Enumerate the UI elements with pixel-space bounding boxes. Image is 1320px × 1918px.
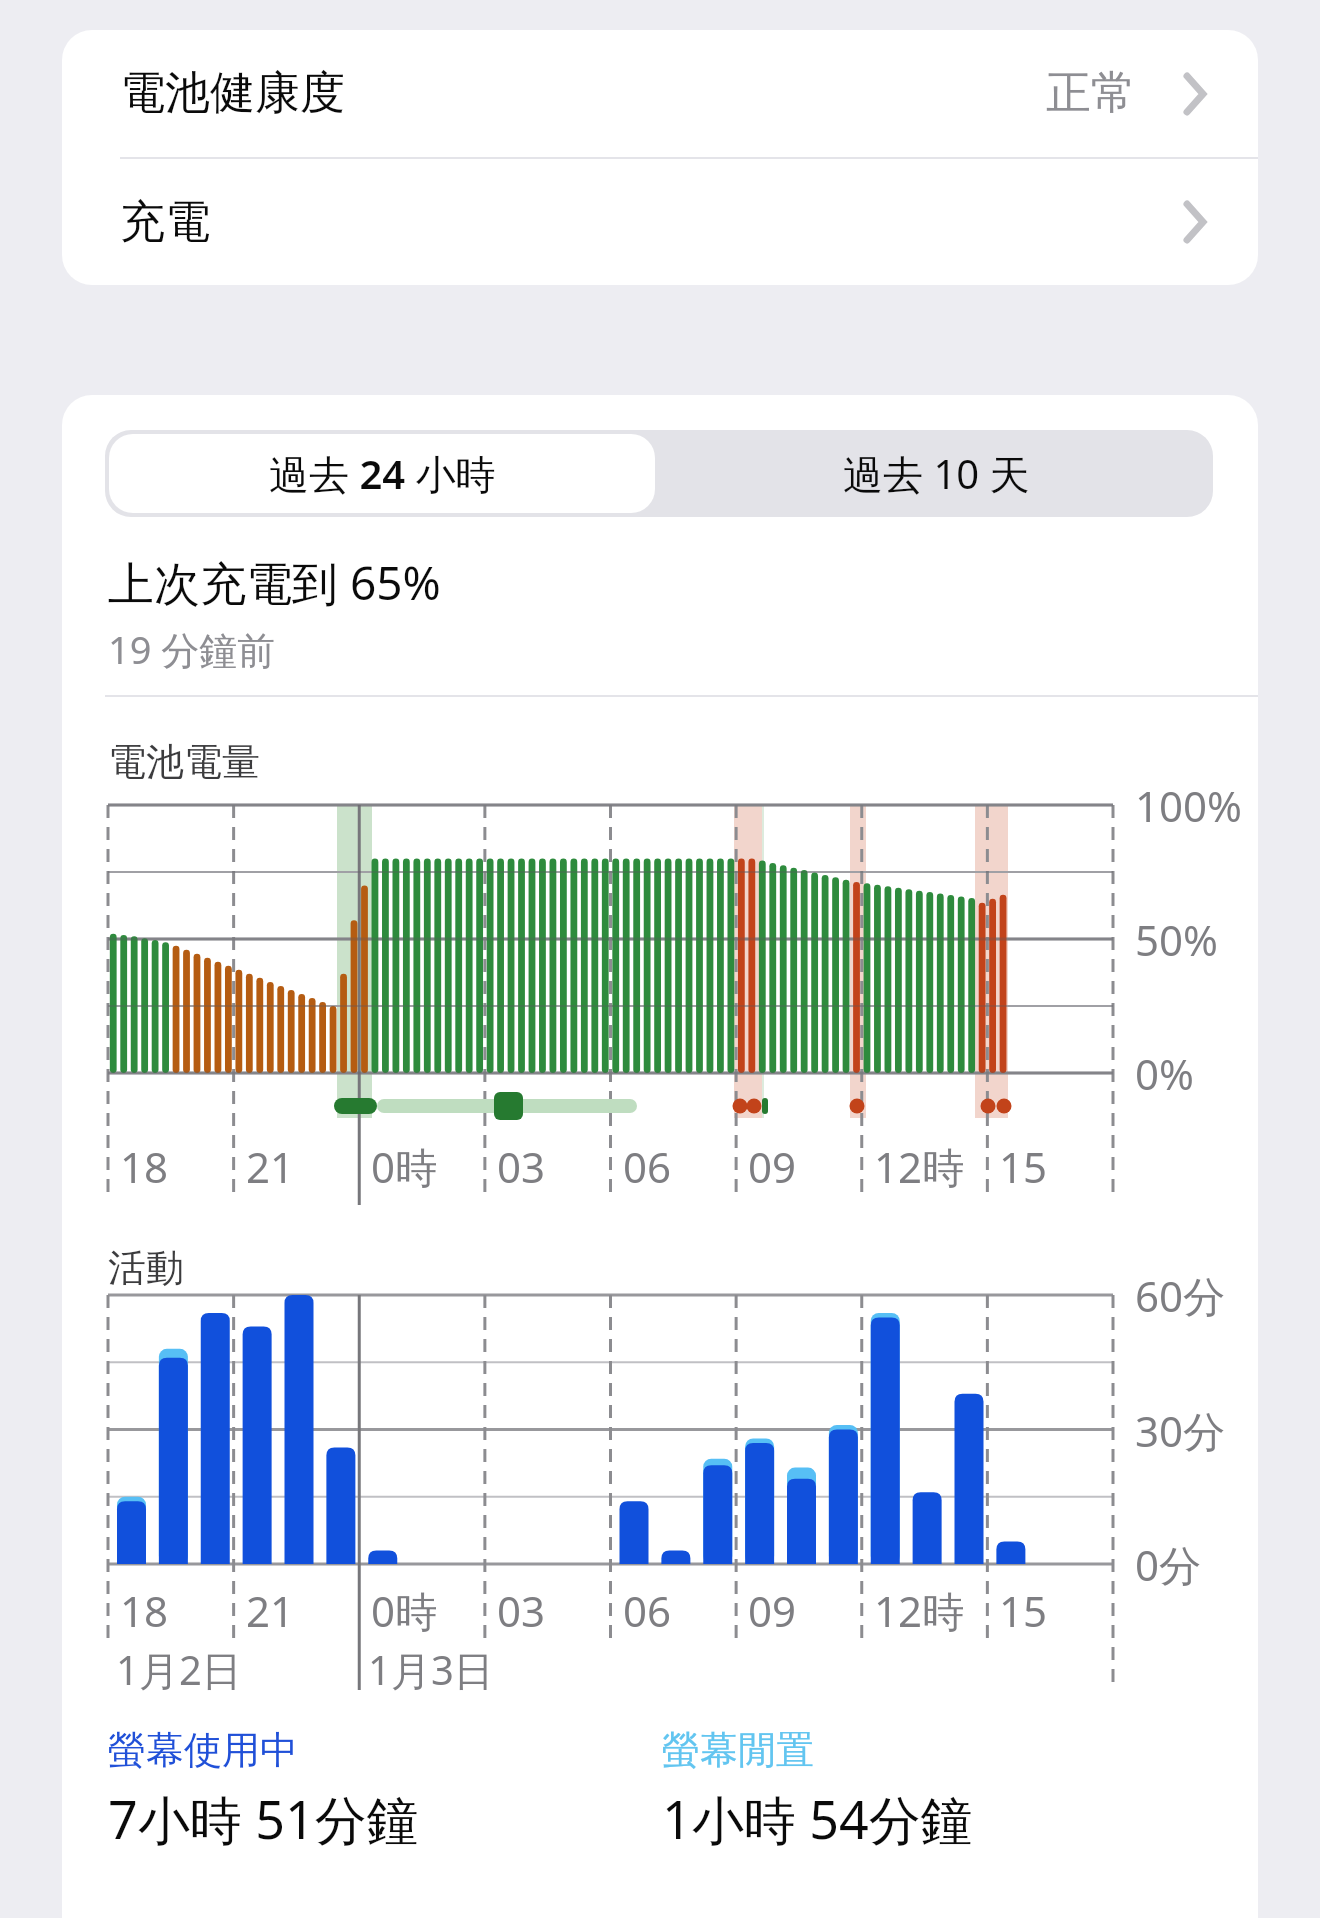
staticText: 21 bbox=[246, 1138, 295, 1194]
staticText: 0分 bbox=[1135, 1536, 1202, 1592]
staticText: 1月2日 bbox=[116, 1642, 242, 1697]
staticText: 06 bbox=[623, 1138, 672, 1194]
staticText: 0時 bbox=[371, 1138, 438, 1194]
staticText: 12時 bbox=[874, 1582, 965, 1638]
staticText: 60分 bbox=[1135, 1267, 1226, 1323]
staticText: 18 bbox=[120, 1138, 169, 1194]
staticText: 電池健康度 bbox=[120, 65, 345, 122]
staticText: 100% bbox=[1135, 777, 1242, 833]
staticText: 1小時 54分鐘 bbox=[662, 1783, 973, 1851]
button[interactable]: 電池健康度 bbox=[62, 30, 1258, 157]
staticText: 上次充電到 65% bbox=[108, 551, 441, 614]
staticText: 螢幕閒置 bbox=[662, 1726, 814, 1774]
staticText: 過去 24 小時 bbox=[269, 446, 496, 501]
staticText: 09 bbox=[748, 1138, 797, 1194]
button[interactable]: 過去 24 小時 bbox=[109, 434, 655, 513]
staticText: 06 bbox=[623, 1582, 672, 1638]
staticText: 30分 bbox=[1135, 1402, 1226, 1458]
staticText: 螢幕使用中 bbox=[108, 1726, 298, 1774]
staticText: 03 bbox=[497, 1138, 546, 1194]
staticText: 活動 bbox=[108, 1244, 184, 1292]
staticText: 09 bbox=[748, 1582, 797, 1638]
staticText: 7小時 51分鐘 bbox=[108, 1783, 419, 1851]
staticText: 0% bbox=[1135, 1045, 1194, 1101]
staticText: 充電 bbox=[120, 194, 210, 251]
staticText: 過去 10 天 bbox=[843, 446, 1030, 501]
staticText: 18 bbox=[120, 1582, 169, 1638]
staticText: 正常 bbox=[1046, 65, 1136, 122]
staticText: 15 bbox=[999, 1138, 1048, 1194]
staticText: 15 bbox=[999, 1582, 1048, 1638]
staticText: 50% bbox=[1135, 911, 1218, 967]
staticText: 21 bbox=[246, 1582, 295, 1638]
staticText: 1月3日 bbox=[368, 1642, 494, 1697]
staticText: 電池電量 bbox=[108, 738, 260, 786]
staticText: 0時 bbox=[371, 1582, 438, 1638]
staticText: 12時 bbox=[874, 1138, 965, 1194]
staticText: 03 bbox=[497, 1582, 546, 1638]
button[interactable]: 充電 bbox=[62, 159, 1258, 285]
staticText: 19 分鐘前 bbox=[108, 623, 276, 675]
button[interactable]: 過去 10 天 bbox=[659, 430, 1213, 517]
